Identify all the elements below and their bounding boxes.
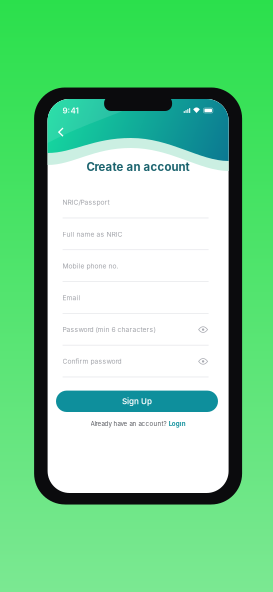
staticText: Full name as NRIC [63,230,123,238]
staticText: NRIC/Passport [63,198,110,206]
staticText: Create an account [87,160,190,174]
button[interactable]: Back [52,121,70,143]
button[interactable]: NRIC/Passport [63,186,209,218]
staticText: Mobile phone no. [63,262,119,270]
button[interactable]: Password (min 6 characters) [63,314,209,345]
staticText: Password (min 6 characters) [63,326,156,334]
staticText: Already have an account? [90,420,166,427]
staticText: Email [63,294,81,302]
staticText: Sign Up [122,396,152,406]
button[interactable]: Full name as NRIC [63,218,209,250]
staticText: Login [169,420,186,427]
button[interactable]: Sign Up [56,391,218,412]
staticText: Confirm password [63,357,122,365]
button[interactable]: Mobile phone no. [63,250,209,282]
button[interactable]: Email [63,282,209,314]
button[interactable]: Already have an account? [48,420,229,427]
button[interactable]: Confirm password [63,345,209,377]
staticText: 9:41 [63,106,79,115]
